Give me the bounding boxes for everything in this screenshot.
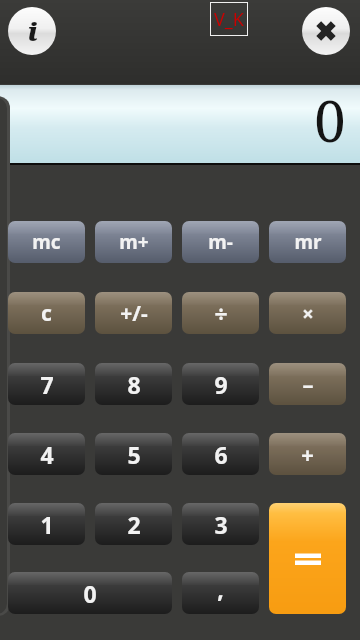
button[interactable]: – [269,363,346,405]
button[interactable]: 3 [182,503,259,545]
button[interactable]: 4 [8,433,85,475]
button[interactable]: × [269,292,346,334]
staticText: 9 [214,369,228,400]
staticText: c [41,299,52,328]
button[interactable]: ÷ [182,292,259,334]
button[interactable]: 7 [8,363,85,405]
staticText: +/- [120,299,148,328]
button[interactable]: Info [8,7,56,55]
button[interactable]: 5 [95,433,172,475]
staticText: 2 [127,509,141,540]
staticText: m- [208,229,233,255]
button[interactable] [269,503,346,614]
staticText: , [217,573,224,604]
staticText: mr [294,229,322,255]
staticText: V_K [214,7,244,32]
button[interactable]: mr [269,221,346,263]
button[interactable]: +/- [95,292,172,334]
staticText: m+ [119,229,149,255]
button[interactable]: 6 [182,433,259,475]
staticText: 1 [40,509,54,540]
staticText: ÷ [214,298,228,329]
staticText: 3 [214,509,228,540]
staticText: 5 [127,439,141,470]
button[interactable]: 1 [8,503,85,545]
button[interactable]: Close [302,7,350,55]
button[interactable]: 2 [95,503,172,545]
button[interactable]: m+ [95,221,172,263]
staticText: 0 [314,82,346,158]
button[interactable]: c [8,292,85,334]
button[interactable]: m- [182,221,259,263]
button[interactable]: + [269,433,346,475]
staticText: + [301,439,314,469]
button[interactable]: mc [8,221,85,263]
staticText: 6 [214,439,228,470]
staticText: – [302,369,314,399]
button[interactable]: 0 [8,572,172,614]
staticText: 7 [40,369,54,400]
button[interactable]: 9 [182,363,259,405]
staticText: 0 [83,578,97,609]
button[interactable]: , [182,572,259,614]
staticText: 8 [127,369,141,400]
staticText: mc [32,229,61,255]
staticText: 4 [40,439,54,470]
staticText: × [302,300,314,327]
staticText: i [27,13,38,48]
button[interactable]: 8 [95,363,172,405]
